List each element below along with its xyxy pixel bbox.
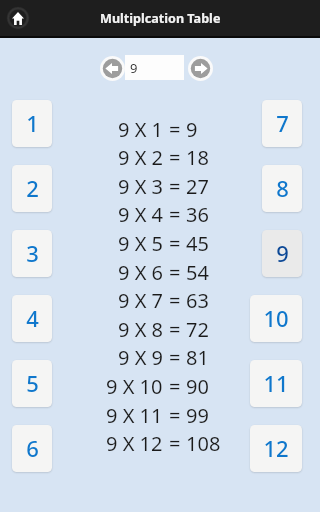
staticText: 8	[276, 173, 289, 203]
button[interactable]: 3	[12, 230, 52, 277]
staticText: 10	[263, 303, 289, 333]
staticText: 9 X 10	[106, 373, 163, 400]
staticText: 9 X 2	[118, 144, 163, 171]
staticText: 11	[263, 368, 289, 398]
button[interactable]: 5	[12, 360, 52, 407]
button[interactable]: 1	[12, 100, 52, 147]
staticText: 9	[130, 59, 138, 77]
button[interactable]: 10	[250, 295, 302, 342]
staticText: 9 X 3	[118, 173, 163, 200]
staticText: =	[169, 259, 181, 286]
staticText: =	[169, 430, 181, 457]
staticText: =	[169, 402, 181, 429]
button[interactable]: 4	[12, 295, 52, 342]
staticText: 2	[26, 173, 39, 203]
staticText: =	[169, 116, 181, 143]
staticText: 4	[26, 303, 39, 333]
staticText: 108	[186, 430, 221, 457]
staticText: =	[169, 373, 181, 400]
staticText: 54	[186, 259, 209, 286]
staticText: 99	[186, 402, 209, 429]
button[interactable]: 12	[250, 425, 302, 472]
staticText: 9 X 6	[118, 259, 163, 286]
staticText: 1	[26, 108, 39, 138]
staticText: 9	[186, 116, 198, 143]
staticText: =	[169, 230, 181, 257]
staticText: 3	[26, 238, 39, 268]
button[interactable]: 9	[262, 230, 302, 277]
staticText: 9 X 12	[106, 430, 163, 457]
staticText: 12	[263, 433, 289, 463]
staticText: =	[169, 144, 181, 171]
staticText: 18	[186, 144, 209, 171]
button[interactable]: 11	[250, 360, 302, 407]
staticText: 81	[186, 344, 209, 371]
button[interactable]: 8	[262, 165, 302, 212]
staticText: 9	[276, 238, 289, 268]
staticText: 90	[186, 373, 209, 400]
staticText: Multiplcation Table	[100, 10, 221, 27]
staticText: 9 X 5	[118, 230, 163, 257]
staticText: 9 X 11	[106, 402, 163, 429]
button[interactable]: Previous number	[100, 56, 125, 81]
staticText: 9 X 8	[118, 316, 163, 343]
staticText: =	[169, 287, 181, 314]
button[interactable]: 6	[12, 425, 52, 472]
button[interactable]: 9	[125, 55, 184, 80]
staticText: 6	[26, 433, 39, 463]
staticText: 9 X 9	[118, 344, 163, 371]
staticText: =	[169, 173, 181, 200]
staticText: =	[169, 201, 181, 228]
button[interactable]: 7	[262, 100, 302, 147]
staticText: 27	[186, 173, 209, 200]
staticText: 45	[186, 230, 209, 257]
staticText: =	[169, 316, 181, 343]
staticText: 5	[26, 368, 39, 398]
button[interactable]: Home	[0, 0, 35, 36]
button[interactable]: 2	[12, 165, 52, 212]
staticText: 72	[186, 316, 209, 343]
staticText: =	[169, 344, 181, 371]
staticText: 36	[186, 201, 209, 228]
staticText: 9 X 4	[118, 201, 163, 228]
staticText: 7	[276, 108, 289, 138]
button[interactable]: Next number	[188, 56, 213, 81]
staticText: 9 X 1	[118, 116, 163, 143]
staticText: 63	[186, 287, 209, 314]
staticText: 9 X 7	[118, 287, 163, 314]
